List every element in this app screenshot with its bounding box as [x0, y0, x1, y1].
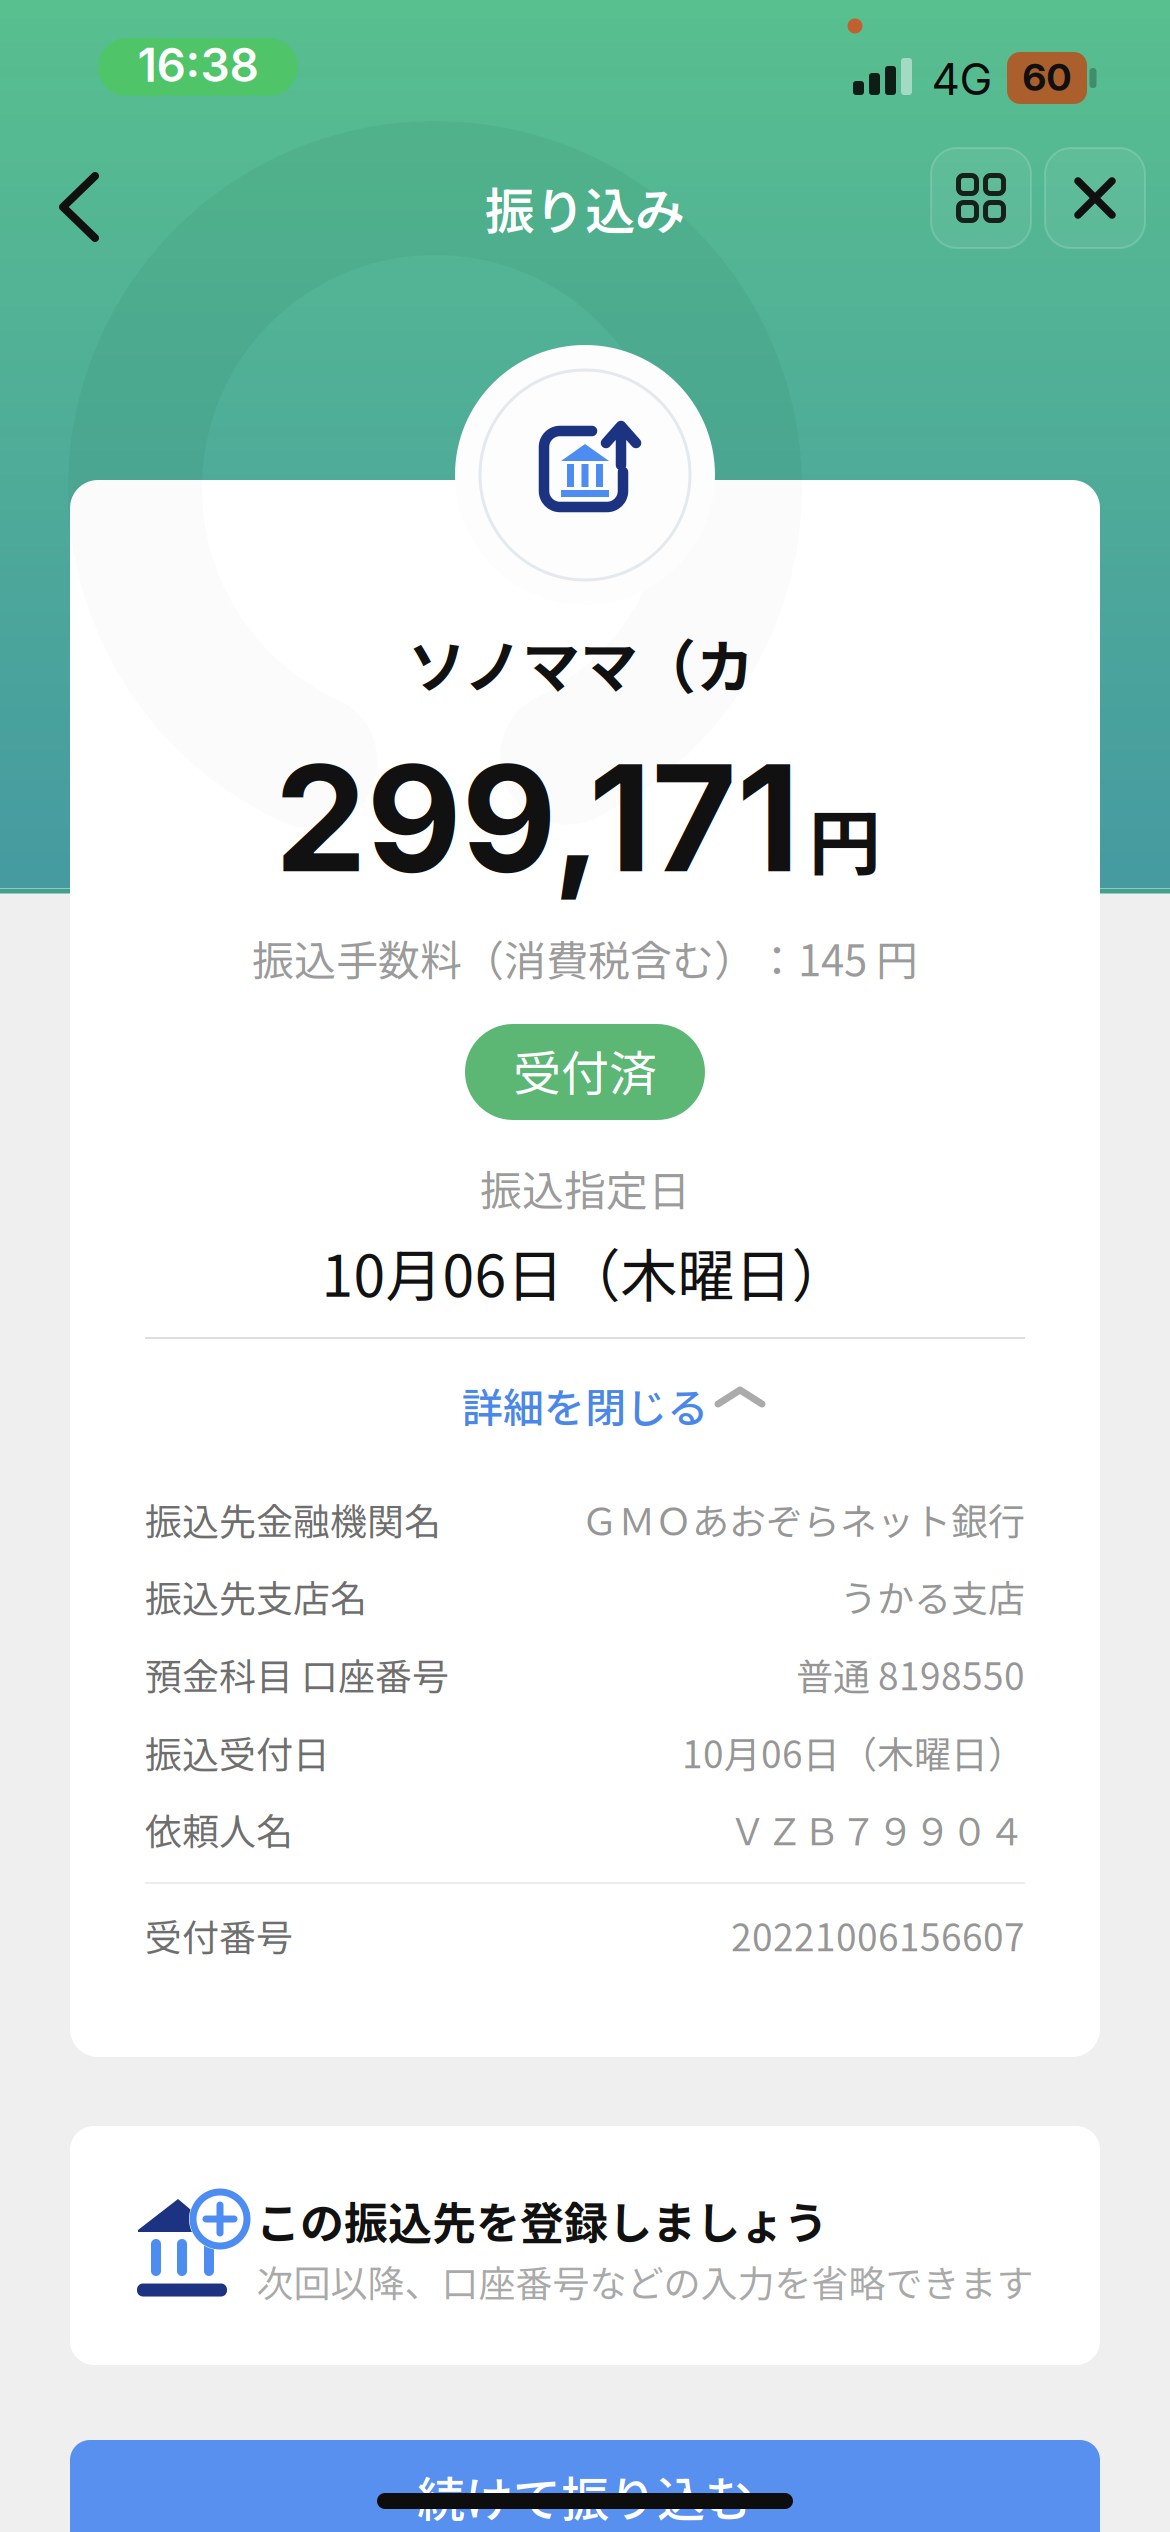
staticText: ＶＺＢ７９９０４	[729, 1802, 1025, 1856]
button[interactable]: Menu	[931, 148, 1031, 248]
staticText: この振込先を登録しましょう	[256, 2188, 828, 2252]
staticText: 振込先金融機関名	[145, 1492, 441, 1546]
staticText: 60	[1022, 54, 1071, 100]
staticText: ＧＭＯあおぞらネット銀行	[581, 1492, 1025, 1546]
staticText: ソノママ（カ	[408, 621, 754, 705]
staticText: 続けて振り込む	[417, 2461, 753, 2531]
staticText: 円	[809, 786, 881, 890]
staticText: 依頼人名	[145, 1802, 293, 1856]
staticText: 4G	[931, 52, 992, 106]
staticText: 振り込み	[485, 172, 685, 244]
staticText: 16:38	[137, 37, 258, 93]
button[interactable]: Close	[1045, 148, 1145, 248]
staticText: 次回以降、口座番号などの入力を省略できます	[256, 2254, 1033, 2308]
staticText: 振込受付日	[145, 1725, 330, 1779]
button[interactable]: 詳細を閉じる	[425, 1370, 765, 1440]
button[interactable]: Back	[23, 152, 133, 262]
staticText: 普通 8198550	[796, 1647, 1025, 1701]
staticText: 10月06日（木曜日）	[682, 1725, 1025, 1779]
staticText: 振込先支店名	[145, 1569, 367, 1623]
staticText: 20221006156607	[731, 1908, 1025, 1962]
staticText: 振込手数料（消費税含む）：145 円	[252, 928, 918, 988]
staticText: 10月06日（木曜日）	[321, 1231, 848, 1313]
staticText: 299,171	[274, 729, 799, 907]
staticText: 振込指定日	[480, 1158, 690, 1218]
staticText: うかる支店	[840, 1569, 1025, 1623]
button[interactable]: 続けて振り込む	[70, 2440, 1100, 2532]
staticText: 受付番号	[145, 1908, 293, 1962]
staticText: 受付済	[513, 1035, 657, 1105]
staticText: 詳細を閉じる	[462, 1375, 708, 1435]
staticText: 預金科目 口座番号	[145, 1647, 449, 1701]
button[interactable]: この振込先を登録しましょう	[70, 2126, 1100, 2365]
